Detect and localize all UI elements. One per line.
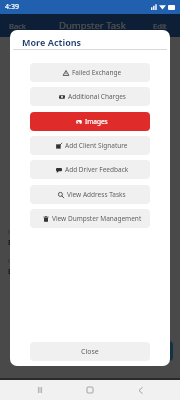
staticText: Add Client Signature: [65, 141, 128, 150]
staticText: Additional Charges: [68, 92, 126, 101]
staticText: Dumpster Task: [59, 19, 126, 32]
staticText: BEDROCK: [8, 238, 39, 247]
staticText: 4:39: [5, 2, 19, 12]
button[interactable]: Failed Exchange: [30, 63, 150, 82]
staticText: Back: [9, 21, 26, 31]
button[interactable]: Back: [130, 380, 150, 400]
button[interactable]: Add Driver Feedback: [30, 160, 150, 179]
staticText: Failed Exchange: [72, 68, 122, 77]
button[interactable]: Additional Charges: [30, 87, 150, 106]
staticText: Edit: [153, 21, 167, 31]
button[interactable]: Add: [150, 341, 173, 361]
staticText: BEDROCK: [8, 267, 39, 276]
button[interactable]: Recents: [30, 380, 50, 400]
button[interactable]: View Dumpster Management: [30, 209, 150, 228]
staticText: Customer: [8, 257, 34, 264]
staticText: View Dumpster Management: [52, 214, 142, 223]
button[interactable]: Images: [30, 112, 150, 131]
button[interactable]: Edit: [148, 17, 180, 35]
button[interactable]: View Address Tasks: [30, 185, 150, 204]
button[interactable]: Home: [80, 380, 100, 400]
button[interactable]: Add Client Signature: [30, 136, 150, 155]
staticText: More Actions: [22, 36, 82, 48]
button[interactable]: Back: [0, 17, 31, 35]
staticText: Close: [81, 347, 99, 357]
staticText: View Address Tasks: [67, 190, 126, 199]
staticText: Customer: [8, 228, 34, 235]
staticText: Images: [85, 117, 108, 126]
button[interactable]: Close: [30, 342, 150, 361]
staticText: Add Driver Feedback: [65, 165, 129, 174]
